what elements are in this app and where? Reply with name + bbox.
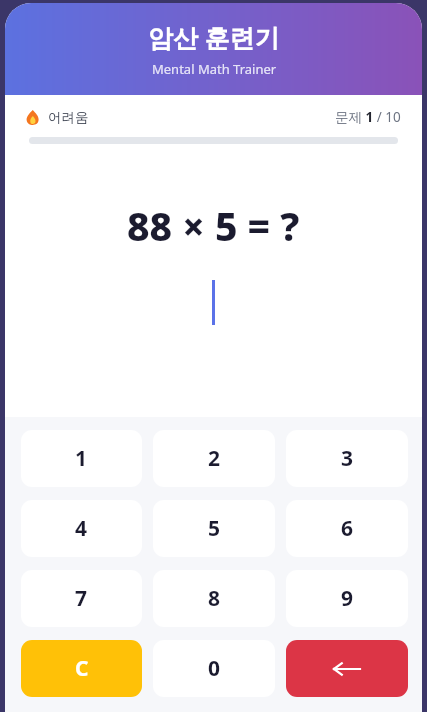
button[interactable]: 1 bbox=[21, 430, 142, 487]
button[interactable]: 9 bbox=[286, 570, 408, 627]
button[interactable]: 0 bbox=[153, 640, 275, 697]
button[interactable]: Backspace bbox=[286, 640, 408, 697]
button[interactable]: 6 bbox=[286, 500, 408, 557]
button[interactable]: 8 bbox=[153, 570, 275, 627]
staticText: 1 bbox=[75, 444, 88, 473]
staticText: 7 bbox=[75, 584, 88, 613]
staticText: 5 bbox=[208, 514, 221, 543]
staticText: 88 × 5 = ? bbox=[127, 199, 300, 252]
staticText: 문제 1 / 10 bbox=[335, 108, 401, 126]
button[interactable]: C bbox=[21, 640, 142, 697]
staticText: 2 bbox=[208, 444, 221, 473]
staticText: C bbox=[75, 654, 89, 683]
staticText: 6 bbox=[341, 514, 354, 543]
staticText: 암산 훈련기 bbox=[148, 20, 280, 54]
button[interactable]: 4 bbox=[21, 500, 142, 557]
button[interactable]: 3 bbox=[286, 430, 408, 487]
staticText: 8 bbox=[208, 584, 221, 613]
staticText: Mental Math Trainer bbox=[152, 60, 277, 78]
button[interactable]: 5 bbox=[153, 500, 275, 557]
staticText: 4 bbox=[75, 514, 88, 543]
staticText: 9 bbox=[341, 584, 354, 613]
button[interactable]: 2 bbox=[153, 430, 275, 487]
button[interactable]: 7 bbox=[21, 570, 142, 627]
staticText: 3 bbox=[341, 444, 354, 473]
staticText: 0 bbox=[208, 654, 221, 683]
staticText: 어려움 bbox=[48, 109, 89, 126]
